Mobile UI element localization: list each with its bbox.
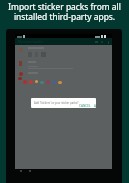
button[interactable]: ADD — [93, 104, 96, 108]
button[interactable] — [15, 71, 112, 87]
staticText: ADD — [94, 104, 96, 108]
staticText: Add 'Stickers' to your sticker packs? — [34, 101, 79, 105]
staticText: CANCEL — [79, 104, 91, 108]
button[interactable] — [15, 59, 112, 72]
button[interactable]: CANCEL — [78, 104, 92, 108]
button[interactable]: Add 'Stickers' to your sticker packs? — [31, 98, 96, 108]
button[interactable]: Sort — [94, 40, 98, 44]
button[interactable]: More options — [106, 40, 110, 44]
staticText: My sticker packs — [18, 40, 43, 44]
staticText: Import sticker packs from all installed … — [4, 1, 125, 22]
button[interactable]: Search — [100, 40, 104, 44]
button[interactable] — [15, 45, 112, 58]
